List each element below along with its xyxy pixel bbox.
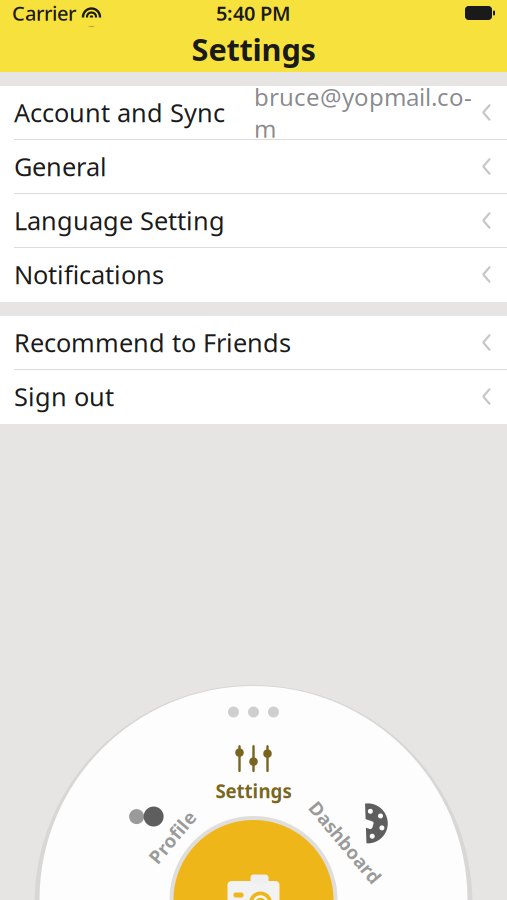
- button[interactable]: Account and Sync: [0, 86, 507, 140]
- button[interactable]: General: [0, 140, 507, 194]
- staticText: Settings: [215, 779, 291, 803]
- staticText: Sign out: [14, 380, 114, 413]
- staticText: Dashboard: [307, 836, 408, 860]
- staticText: Carrier: [12, 0, 76, 26]
- staticText: Notifications: [14, 258, 164, 291]
- button[interactable]: Notifications: [0, 248, 507, 302]
- staticText: 5:40 PM: [216, 0, 291, 26]
- staticText: Recommend to Friends: [14, 326, 291, 359]
- staticText: Settings: [191, 29, 315, 69]
- button[interactable]: Sign out: [0, 370, 507, 424]
- staticText: Profile: [126, 832, 188, 856]
- button[interactable]: Recommend to Friends: [0, 316, 507, 370]
- staticText: bruce@yopmail.com: [254, 81, 472, 144]
- button[interactable]: Camera: [169, 816, 337, 900]
- staticText: General: [14, 150, 107, 183]
- staticText: Account and Sync: [14, 96, 225, 129]
- staticText: Language Setting: [14, 204, 225, 237]
- button[interactable]: Language Setting: [0, 194, 507, 248]
